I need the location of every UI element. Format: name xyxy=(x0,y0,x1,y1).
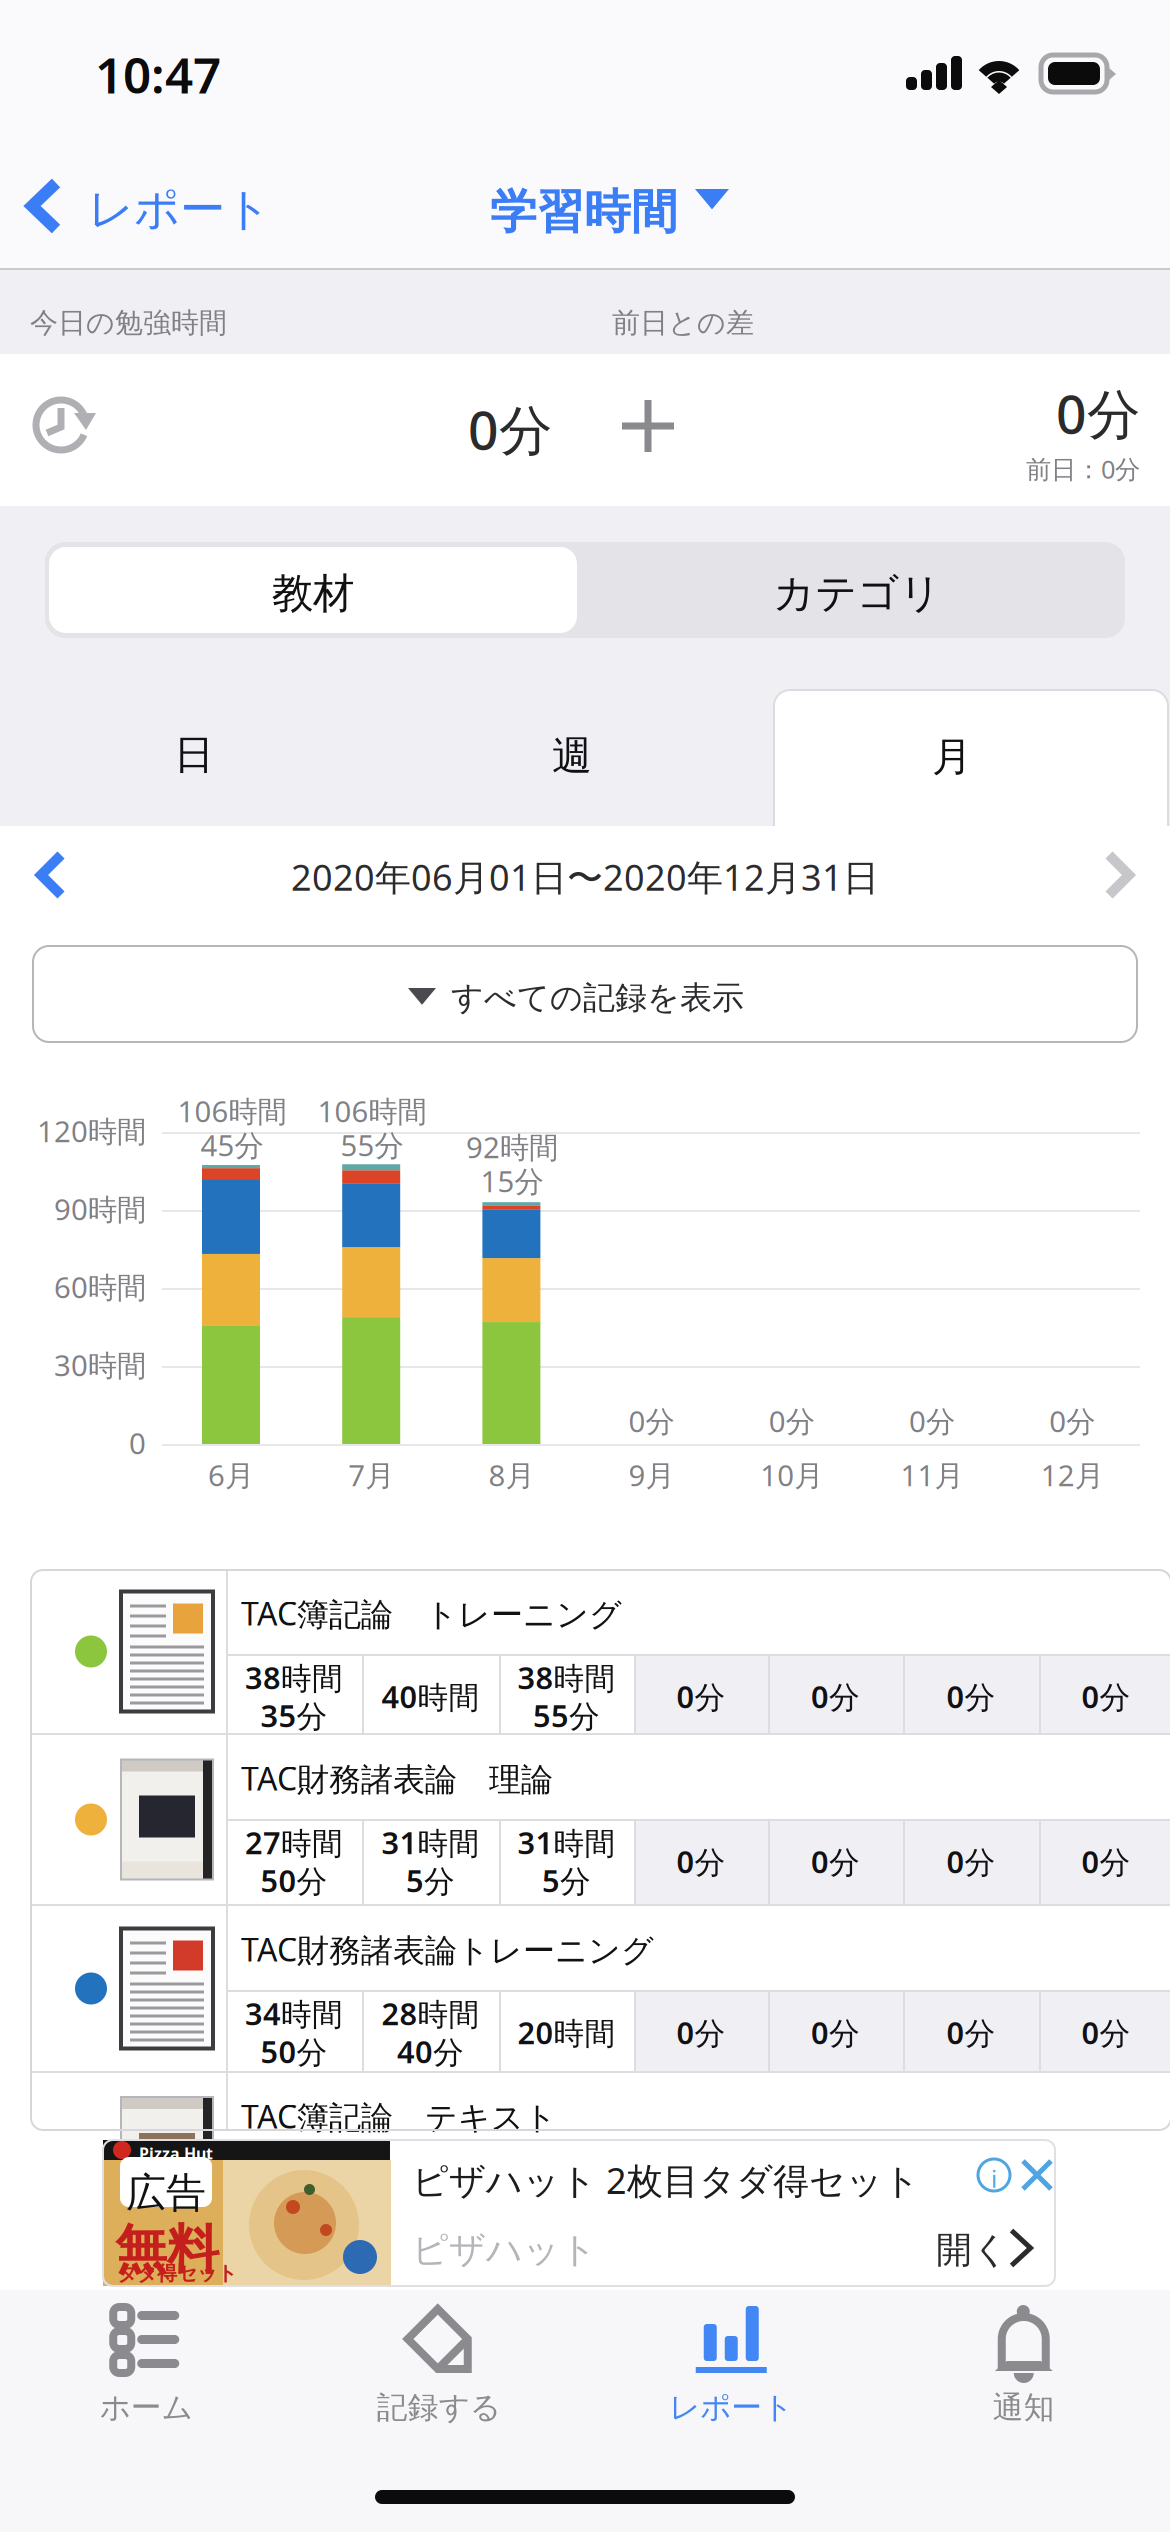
staticText: 0分 xyxy=(811,2012,860,2053)
staticText: 7月 xyxy=(348,1455,394,1494)
staticText: 92時間 xyxy=(466,1127,558,1166)
staticText: 週 xyxy=(552,731,592,780)
staticText: 0分 xyxy=(1081,2012,1130,2053)
staticText: 0分 xyxy=(1056,378,1140,448)
staticText: 0分 xyxy=(946,1841,995,1882)
staticText: 38時間 xyxy=(517,1657,615,1698)
staticText: 2020年06月01日〜2020年12月31日 xyxy=(291,853,879,901)
staticText: 120時間 xyxy=(37,1111,146,1150)
button[interactable]: レポート xyxy=(0,2290,292,2450)
button[interactable]: カテゴリ xyxy=(0,506,528,592)
staticText: 0分 xyxy=(676,1676,725,1717)
staticText: 15分 xyxy=(480,1161,543,1200)
staticText: 教材 xyxy=(272,568,354,619)
staticText: 28時間 xyxy=(381,1993,479,2034)
button[interactable] xyxy=(0,270,80,350)
staticText: レポート xyxy=(669,2389,793,2426)
staticText: 6月 xyxy=(208,1455,254,1494)
staticText: 38時間 xyxy=(245,1657,343,1698)
staticText: i xyxy=(991,2162,997,2194)
staticText: ピザハット xyxy=(412,2228,597,2272)
staticText: 0分 xyxy=(769,1401,815,1440)
button[interactable] xyxy=(0,826,120,936)
staticText: 0分 xyxy=(676,2012,725,2053)
staticText: 10月 xyxy=(760,1455,823,1494)
staticText: 9月 xyxy=(629,1455,675,1494)
staticText: 0分 xyxy=(1049,1401,1095,1440)
staticText: 31時間 xyxy=(381,1822,479,1863)
staticText: 10:47 xyxy=(95,41,221,107)
staticText: 0分 xyxy=(811,1841,860,1882)
staticText: 60時間 xyxy=(54,1267,146,1306)
staticText: 8月 xyxy=(488,1455,534,1494)
button[interactable]: ホーム xyxy=(0,2290,292,2450)
staticText: 12月 xyxy=(1041,1455,1104,1494)
staticText: 記録する xyxy=(377,2389,501,2426)
staticText: 106時間 xyxy=(177,1091,286,1130)
staticText: 40時間 xyxy=(381,1676,479,1717)
staticText: 5分 xyxy=(406,1860,455,1901)
staticText: 0分 xyxy=(1081,1841,1130,1882)
staticText: 0分 xyxy=(946,1676,995,1717)
staticText: 20時間 xyxy=(517,2012,615,2053)
staticText: 35分 xyxy=(260,1695,327,1736)
staticText: 日 xyxy=(174,730,214,779)
staticText: 106時間 xyxy=(317,1091,426,1130)
staticText: 月 xyxy=(932,732,972,781)
staticText: 前日との差 xyxy=(612,306,754,340)
staticText: 30時間 xyxy=(54,1345,146,1384)
staticText: 31時間 xyxy=(517,1822,615,1863)
button[interactable]: 通知 xyxy=(0,2290,292,2450)
staticText: 34時間 xyxy=(245,1993,343,2034)
staticText: 0分 xyxy=(676,1841,725,1882)
button[interactable]: レポート xyxy=(0,132,300,252)
button[interactable]: 日 xyxy=(0,696,390,826)
button[interactable]: 記録する xyxy=(0,2290,292,2450)
staticText: 55分 xyxy=(533,1695,600,1736)
staticText: 0 xyxy=(129,1423,146,1462)
staticText: TAC財務諸表論トレーニング xyxy=(241,1928,654,1971)
button[interactable] xyxy=(0,826,120,936)
staticText: TAC財務諸表論 理論 xyxy=(241,1757,553,1800)
staticText: 50分 xyxy=(260,1860,327,1901)
staticText: TAC簿記論 テキスト xyxy=(241,2095,557,2138)
staticText: 40分 xyxy=(397,2031,464,2072)
staticText: 学習時間 xyxy=(490,183,678,241)
staticText: ホーム xyxy=(100,2389,193,2426)
staticText: 90時間 xyxy=(54,1189,146,1228)
staticText: 今日の勉強時間 xyxy=(30,306,227,340)
staticText: 27時間 xyxy=(245,1822,343,1863)
staticText: レポート xyxy=(88,181,271,237)
button[interactable]: 月 xyxy=(0,696,394,866)
staticText: カテゴリ xyxy=(773,568,941,619)
staticText: 前日：0分 xyxy=(1026,452,1140,486)
staticText: 0分 xyxy=(468,394,552,464)
button[interactable]: 週 xyxy=(0,696,390,826)
staticText: 0分 xyxy=(811,1676,860,1717)
staticText: 11月 xyxy=(900,1455,963,1494)
staticText: タダ得セット xyxy=(117,2261,237,2285)
button[interactable]: すべての記録を表示 xyxy=(33,946,1137,1042)
button[interactable]: 学習時間 xyxy=(0,132,290,252)
staticText: 0分 xyxy=(629,1401,675,1440)
staticText: TAC簿記論 トレーニング xyxy=(241,1592,622,1635)
staticText: 開く xyxy=(936,2228,1009,2272)
staticText: 50分 xyxy=(260,2031,327,2072)
staticText: すべての記録を表示 xyxy=(451,978,744,1018)
button[interactable]: 教材 xyxy=(0,506,528,592)
staticText: 広告 xyxy=(126,2168,206,2217)
staticText: Pizza Hut xyxy=(139,2143,213,2164)
staticText: 通知 xyxy=(993,2389,1055,2426)
staticText: 5分 xyxy=(542,1860,591,1901)
staticText: 55分 xyxy=(340,1125,403,1164)
staticText: 0分 xyxy=(909,1401,955,1440)
staticText: ピザハット 2枚目タダ得セット xyxy=(412,2156,920,2204)
staticText: 無料 xyxy=(115,2218,219,2282)
staticText: 45分 xyxy=(200,1125,263,1164)
button[interactable] xyxy=(103,2140,159,2196)
staticText: 0分 xyxy=(946,2012,995,2053)
staticText: 0分 xyxy=(1081,1676,1130,1717)
